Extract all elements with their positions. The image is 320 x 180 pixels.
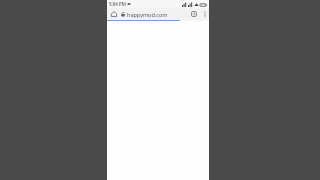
button[interactable]: Home bbox=[107, 8, 120, 20]
button[interactable]: Switch or close tabs bbox=[188, 8, 200, 20]
button[interactable]: happymod.com bbox=[120, 8, 188, 20]
staticText: 5:04 PM bbox=[109, 1, 126, 7]
staticText: happymod.com bbox=[127, 11, 168, 18]
button[interactable]: Customize and control Chrome bbox=[200, 8, 209, 20]
